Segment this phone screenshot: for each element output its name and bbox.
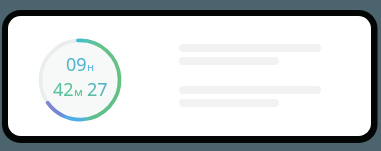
staticText: н [87,59,95,75]
staticText: 27 [87,77,108,102]
staticText: м [74,84,83,100]
staticText: 42 [53,77,74,102]
staticText: 09 [66,52,87,77]
button[interactable]: Remaining time 09 hours 42 minutes 27 se… [38,38,122,122]
button[interactable]: Remaining time 09 hours 42 minutes 27 se… [8,16,371,136]
